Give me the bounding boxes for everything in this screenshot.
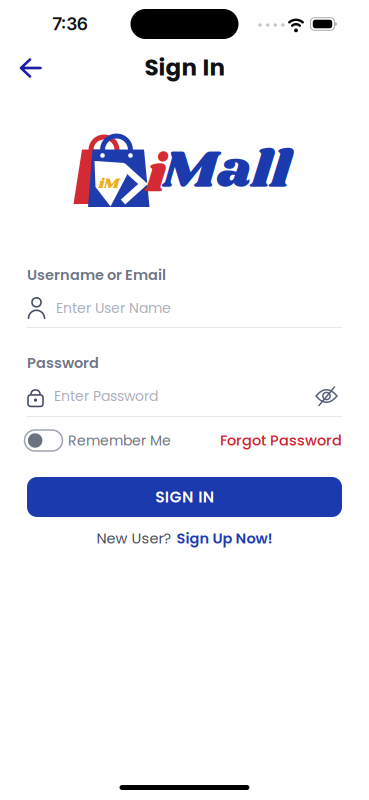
staticText: Sign In (144, 51, 225, 84)
staticText: Enter User Name (56, 298, 171, 318)
staticText: 7:36 (52, 13, 88, 35)
staticText: Password (27, 353, 99, 373)
button[interactable]: Sign Up Now! (176, 528, 272, 549)
staticText: Remember Me (68, 431, 171, 450)
staticText: Username or Email (27, 265, 166, 285)
staticText: Mall (162, 132, 290, 210)
staticText: New User? (96, 528, 171, 549)
staticText: iM (98, 173, 119, 195)
button[interactable]: Forgot Password (220, 430, 342, 451)
staticText: Enter Password (54, 386, 158, 406)
button[interactable]: Remember Me (27, 430, 171, 451)
staticText: Forgot Password (220, 430, 342, 451)
staticText: SIGN IN (155, 486, 214, 508)
button[interactable] (315, 385, 342, 407)
staticText: Sign Up Now! (176, 528, 272, 549)
button[interactable]: SIGN IN (27, 477, 342, 517)
button[interactable] (8, 48, 52, 88)
staticText: i (146, 137, 165, 214)
